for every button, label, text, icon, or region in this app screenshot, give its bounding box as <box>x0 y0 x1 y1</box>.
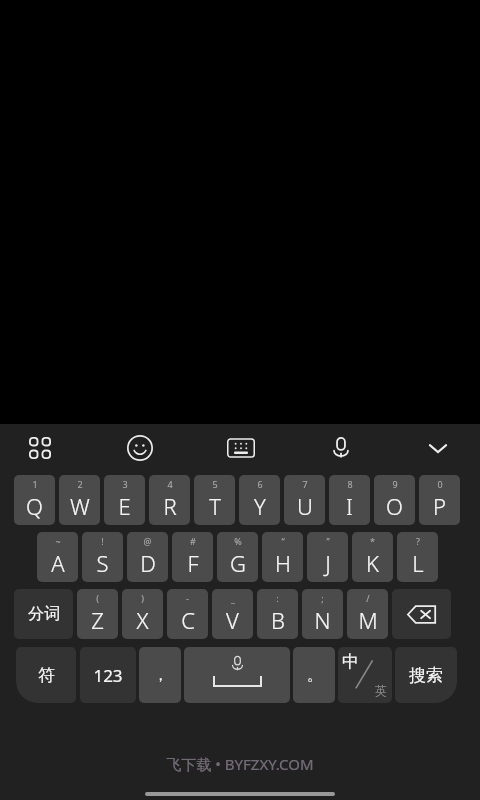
button[interactable]: 0 <box>419 475 460 525</box>
button[interactable]: 6 <box>239 475 280 525</box>
staticText: L <box>412 548 424 578</box>
staticText: I <box>346 491 353 521</box>
button[interactable]: 。 <box>293 647 335 703</box>
staticText: 9 <box>392 478 398 490</box>
staticText: X <box>136 605 149 635</box>
staticText: Q <box>26 491 43 521</box>
staticText: ; <box>321 592 324 604</box>
staticText: 8 <box>347 478 353 490</box>
staticText: @ <box>143 535 152 547</box>
staticText: H <box>275 548 291 578</box>
staticText: T <box>209 491 221 521</box>
staticText: U <box>297 491 313 521</box>
button[interactable]: 5 <box>194 475 235 525</box>
staticText: 2 <box>77 478 83 490</box>
button[interactable]: “ <box>262 532 303 582</box>
button[interactable]: ! <box>82 532 123 582</box>
staticText: 中 <box>342 651 359 672</box>
button[interactable]: # <box>172 532 213 582</box>
button[interactable]: 1 <box>14 475 55 525</box>
staticText: % <box>234 535 242 547</box>
staticText: ! <box>101 535 104 547</box>
staticText: A <box>51 548 65 578</box>
staticText: J <box>325 548 331 578</box>
button[interactable]: ， <box>139 647 181 703</box>
button[interactable]: Voice input <box>225 651 249 675</box>
staticText: 7 <box>302 478 308 490</box>
staticText: O <box>386 491 403 521</box>
staticText: _ <box>231 592 235 604</box>
staticText: 0 <box>437 478 443 490</box>
staticText: 搜索 <box>409 665 443 686</box>
staticText: “ <box>281 535 285 547</box>
button[interactable]: * <box>352 532 393 582</box>
button[interactable]: 搜索 <box>395 647 457 703</box>
staticText: * <box>370 535 375 547</box>
button[interactable]: ) <box>122 589 163 639</box>
button[interactable]: ? <box>397 532 438 582</box>
staticText: 符 <box>38 665 55 686</box>
staticText: 。 <box>307 666 322 685</box>
button[interactable]: Hide keyboard <box>415 425 461 471</box>
staticText: Y <box>254 491 266 521</box>
button[interactable]: _ <box>212 589 253 639</box>
button[interactable]: / <box>347 589 388 639</box>
staticText: - <box>186 592 189 604</box>
button[interactable]: - <box>167 589 208 639</box>
button[interactable]: 7 <box>284 475 325 525</box>
button[interactable]: ~ <box>37 532 78 582</box>
button[interactable]: 符 <box>16 647 76 703</box>
staticText: ( <box>96 592 99 604</box>
staticText: M <box>358 605 378 635</box>
button[interactable]: 分词 <box>14 589 73 639</box>
staticText: B <box>271 605 285 635</box>
button[interactable]: ; <box>302 589 343 639</box>
button[interactable]: % <box>217 532 258 582</box>
staticText: G <box>230 548 246 578</box>
button[interactable]: 2 <box>59 475 100 525</box>
button[interactable]: Space <box>184 647 290 703</box>
staticText: 5 <box>212 478 218 490</box>
button[interactable]: ” <box>307 532 348 582</box>
staticText: ) <box>141 592 144 604</box>
staticText: 分词 <box>28 604 60 624</box>
button[interactable]: 8 <box>329 475 370 525</box>
staticText: ? <box>416 535 420 547</box>
staticText: Z <box>91 605 104 635</box>
button[interactable]: Backspace <box>392 589 451 639</box>
button[interactable]: 123 <box>80 647 136 703</box>
staticText: 1 <box>32 478 38 490</box>
staticText: R <box>163 491 177 521</box>
staticText: 3 <box>122 478 128 490</box>
staticText: 英 <box>375 683 387 698</box>
staticText: K <box>366 548 379 578</box>
button[interactable]: Emoji <box>117 425 163 471</box>
staticText: F <box>187 548 199 578</box>
button[interactable]: : <box>257 589 298 639</box>
button[interactable]: Voice input <box>318 425 364 471</box>
staticText: C <box>181 605 195 635</box>
staticText: 飞下载 • BYFZXY.COM <box>166 754 314 774</box>
button[interactable]: Chinese English toggle <box>338 647 392 703</box>
staticText: 6 <box>257 478 263 490</box>
button[interactable]: ( <box>77 589 118 639</box>
staticText: E <box>118 491 131 521</box>
staticText: V <box>226 605 239 635</box>
button[interactable]: 4 <box>149 475 190 525</box>
staticText: S <box>96 548 109 578</box>
staticText: N <box>314 605 331 635</box>
button[interactable]: 3 <box>104 475 145 525</box>
button[interactable]: 9 <box>374 475 415 525</box>
staticText: # <box>190 535 196 547</box>
button[interactable]: @ <box>127 532 168 582</box>
staticText: D <box>140 548 156 578</box>
staticText: 123 <box>93 664 123 687</box>
staticText: 4 <box>167 478 173 490</box>
staticText: ~ <box>55 535 61 547</box>
button[interactable]: Keyboard modes <box>17 425 63 471</box>
staticText: W <box>70 491 90 521</box>
staticText: : <box>276 592 279 604</box>
staticText: / <box>366 592 370 604</box>
staticText: ” <box>326 535 330 547</box>
button[interactable]: Switch keyboard <box>218 425 264 471</box>
